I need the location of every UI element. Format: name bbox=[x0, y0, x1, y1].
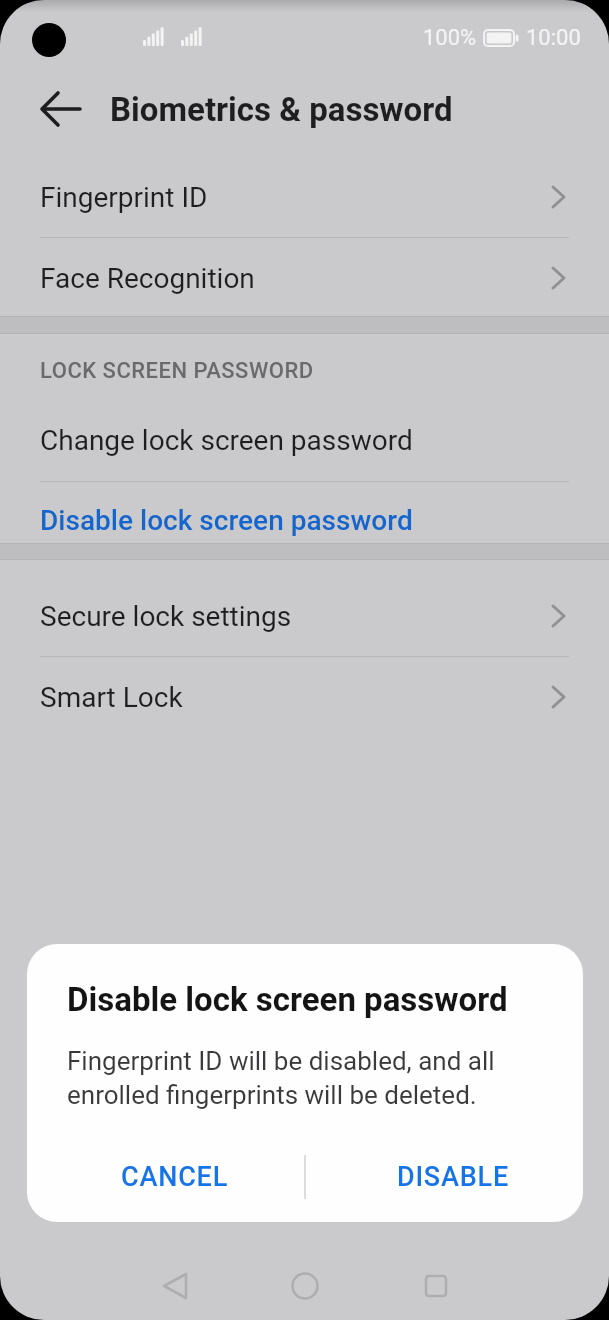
staticText: LOCK SCREEN PASSWORD bbox=[40, 358, 314, 384]
staticText: Fingerprint ID will be disabled, and all… bbox=[67, 1046, 495, 1110]
button[interactable] bbox=[145, 1256, 205, 1316]
button[interactable]: DISABLE bbox=[314, 1144, 583, 1210]
button[interactable]: Disable lock screen password bbox=[0, 480, 609, 560]
staticText: 100% bbox=[423, 25, 477, 51]
button[interactable]: Face Recognition bbox=[0, 238, 609, 318]
button[interactable]: Fingerprint ID bbox=[0, 157, 609, 237]
staticText: Secure lock settings bbox=[40, 600, 292, 633]
staticText: Smart Lock bbox=[40, 681, 183, 714]
button[interactable]: Smart Lock bbox=[0, 657, 609, 737]
button[interactable]: Change lock screen password bbox=[0, 400, 609, 480]
button[interactable] bbox=[30, 84, 90, 134]
staticText: Disable lock screen password bbox=[40, 504, 413, 537]
staticText: 10:00 bbox=[526, 25, 581, 51]
button[interactable] bbox=[406, 1256, 466, 1316]
staticText: DISABLE bbox=[397, 1161, 510, 1193]
button[interactable]: CANCEL bbox=[36, 1144, 313, 1210]
staticText: Face Recognition bbox=[40, 262, 255, 295]
staticText: Disable lock screen password bbox=[67, 980, 508, 1019]
button[interactable]: Secure lock settings bbox=[0, 576, 609, 656]
staticText: Fingerprint ID bbox=[40, 181, 208, 214]
staticText: Biometrics & password bbox=[110, 90, 453, 129]
staticText: Change lock screen password bbox=[40, 424, 413, 457]
button[interactable] bbox=[275, 1256, 335, 1316]
staticText: CANCEL bbox=[121, 1161, 229, 1193]
